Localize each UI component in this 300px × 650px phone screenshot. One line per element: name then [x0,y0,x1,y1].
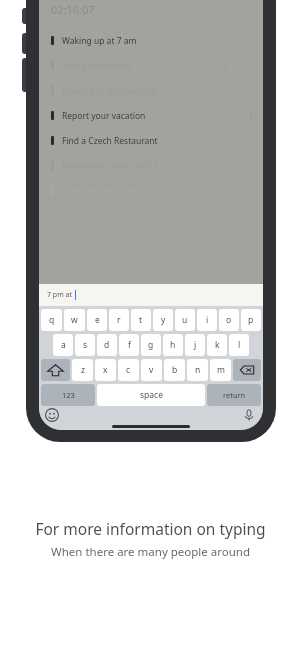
button[interactable]: j [185,334,205,356]
button[interactable]: h [163,334,183,356]
staticText: d [104,339,110,351]
staticText: space [140,389,163,401]
staticText: 02:16:07 [51,2,95,17]
button[interactable]: d [97,334,117,356]
button[interactable]: space [97,384,205,406]
staticText: Waking up at 7 am [62,35,137,47]
staticText: k [215,339,220,351]
staticText: a [61,339,66,351]
button[interactable]: z [72,359,93,381]
staticText: return [223,390,246,400]
staticText: z [81,364,85,376]
button[interactable]: n [187,359,208,381]
button[interactable]: w [64,309,85,331]
staticText: b [172,364,178,376]
button[interactable]: Shift [41,359,70,381]
button[interactable]: e [87,309,107,331]
button[interactable]: o [219,309,239,331]
staticText: 123 [62,390,75,400]
staticText: p [248,314,254,326]
button[interactable]: l [229,334,249,356]
staticText: m [217,364,225,376]
button[interactable]: u [175,309,195,331]
button[interactable]: a [53,334,73,356]
button[interactable]: r [109,309,129,331]
staticText: n [195,364,201,376]
staticText: x [103,364,108,376]
button[interactable]: p [241,309,261,331]
staticText: s [83,339,88,351]
button[interactable]: q [41,309,62,331]
staticText: y [161,314,166,326]
staticText: When there are many people around [51,544,250,560]
button[interactable]: Report your vacation plan to the team··· [47,103,257,128]
staticText: Find a Czech Restaurant [62,135,158,147]
staticText: f [128,339,131,351]
button[interactable]: 123 [41,384,95,406]
staticText: g [148,339,154,351]
staticText: r [117,314,121,326]
staticText: c [126,364,131,376]
staticText: q [49,314,55,326]
button[interactable]: 7 pm at [39,284,263,306]
staticText: i [206,314,209,326]
staticText: h [170,339,176,351]
staticText: l [238,339,241,351]
button[interactable]: b [164,359,185,381]
staticText: 7 pm at [47,290,72,300]
button[interactable]: Dictation [241,407,257,423]
staticText: t [139,314,143,326]
staticText: v [149,364,154,376]
staticText: e [95,314,100,326]
button[interactable]: x [95,359,116,381]
button[interactable]: s [75,334,95,356]
button[interactable]: Waking up at 7 am [47,28,257,53]
staticText: u [182,314,188,326]
button[interactable]: Find a Czech Restaurant [47,128,257,153]
button[interactable]: m [210,359,231,381]
staticText: w [71,314,78,326]
button[interactable]: i [197,309,217,331]
button[interactable]: Emoji [44,407,60,423]
button[interactable]: v [141,359,162,381]
staticText: For more information on typing [35,518,266,539]
button[interactable]: c [118,359,139,381]
button[interactable]: Backspace [233,359,261,381]
button[interactable]: return [207,384,261,406]
staticText: j [194,339,197,351]
button[interactable]: y [153,309,173,331]
button[interactable]: f [119,334,139,356]
button[interactable]: g [141,334,161,356]
staticText: Report your vacation plan to the team··· [62,110,156,122]
button[interactable]: t [131,309,151,331]
staticText: o [226,314,232,326]
button[interactable]: k [207,334,227,356]
